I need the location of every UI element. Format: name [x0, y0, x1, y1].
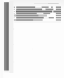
button[interactable]: Scanned document page	[0, 0, 64, 78]
